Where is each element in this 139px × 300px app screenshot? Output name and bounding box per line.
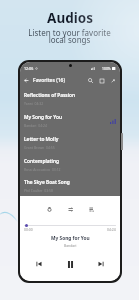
button[interactable]: My Song for You (20, 110, 120, 132)
staticText: Grant Brown 04:55 (24, 145, 55, 150)
staticText: My Song for You (24, 114, 62, 121)
staticText: Contemplating (24, 158, 59, 165)
button[interactable]: Previous (33, 258, 45, 270)
staticText: 04:24 (107, 227, 116, 232)
button[interactable]: Next (95, 258, 107, 270)
staticText: 12:06 (24, 66, 34, 71)
staticText: Reflections of Passion (24, 92, 76, 99)
staticText: 00:00 (24, 227, 33, 232)
staticText: Yanni 04:32 (24, 101, 44, 106)
button[interactable]: Contemplating (20, 154, 120, 176)
staticText: The Skye Boat Song (24, 179, 70, 186)
staticText: Bandari (64, 243, 77, 248)
button[interactable]: Sleep timer (44, 204, 54, 214)
staticText: Listen to your favorite local songs (28, 27, 111, 46)
staticText: 100% (102, 66, 111, 71)
button[interactable]: Back (22, 76, 31, 85)
staticText: Phil Coulter 03:58 (24, 188, 53, 193)
button[interactable]: Playlist (86, 204, 96, 214)
staticText: Favorites (16) (33, 77, 66, 84)
button[interactable]: Shuffle (65, 204, 75, 214)
button[interactable]: View (96, 75, 107, 86)
staticText: Audios (47, 9, 93, 27)
button[interactable]: Search (85, 75, 96, 86)
button[interactable]: Letter to Molly (20, 132, 120, 154)
button[interactable]: The Skye Boat Song (20, 176, 120, 196)
button[interactable]: More options (107, 75, 118, 86)
button[interactable]: Reflections of Passion (20, 88, 120, 110)
staticText: Letter to Molly (24, 136, 59, 143)
staticText: Bandari 04:24 (24, 123, 47, 128)
staticText: Rossi Accoustico 03:12 (24, 167, 61, 172)
staticText: My Song for You (51, 235, 90, 242)
button[interactable]: Pause (63, 257, 77, 271)
